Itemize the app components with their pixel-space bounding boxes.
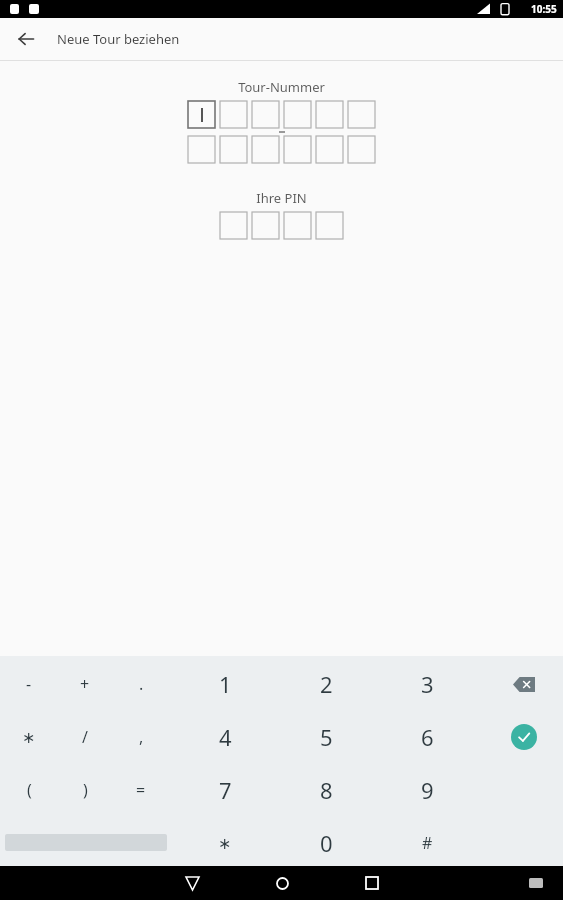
button[interactable]: Back (168, 866, 216, 900)
staticText: , (139, 726, 144, 748)
button[interactable]: 8 (298, 764, 354, 816)
button[interactable]: 3 (399, 658, 455, 710)
button[interactable]: Switch keyboard (523, 870, 549, 896)
staticText: 10:55 (531, 2, 557, 16)
staticText: ) (83, 779, 88, 801)
staticText: Ihre PIN (256, 189, 307, 207)
button[interactable]: 0 (298, 817, 354, 869)
staticText: 0 (320, 828, 333, 858)
staticText: ∗ (22, 728, 36, 747)
button[interactable]: # (399, 817, 455, 869)
button[interactable]: Home (258, 866, 306, 900)
staticText: . (139, 673, 144, 695)
button[interactable]: Digit field (284, 212, 311, 239)
staticText: - (26, 673, 32, 695)
button[interactable]: Digit field (220, 212, 247, 239)
staticText: 7 (219, 775, 232, 805)
staticText: 5 (320, 722, 333, 752)
button[interactable]: Digit field (284, 136, 311, 163)
button[interactable]: 2 (298, 658, 354, 710)
button[interactable]: / (57, 711, 113, 763)
staticText: # (422, 832, 433, 854)
button[interactable]: Digit field (188, 101, 215, 128)
button[interactable]: Digit field (252, 136, 279, 163)
button[interactable]: 7 (197, 764, 253, 816)
staticText: ( (27, 779, 32, 801)
button[interactable]: ( (1, 764, 57, 816)
staticText: + (80, 673, 90, 695)
button[interactable]: Digit field (316, 212, 343, 239)
button[interactable]: Enter (496, 711, 552, 763)
button[interactable]: Digit field (316, 101, 343, 128)
staticText: 8 (320, 775, 333, 805)
staticText: Tour-Nummer (238, 78, 325, 96)
staticText: 4 (219, 722, 232, 752)
staticText: 2 (320, 669, 333, 699)
button[interactable]: + (57, 658, 113, 710)
button[interactable]: Digit field (252, 212, 279, 239)
staticText: Neue Tour beziehen (57, 30, 180, 48)
button[interactable]: Backspace (496, 658, 552, 710)
button[interactable]: Back (10, 23, 42, 55)
button[interactable]: Digit field (220, 136, 247, 163)
button[interactable]: ∗ (197, 817, 253, 869)
staticText: 1 (219, 669, 232, 699)
button[interactable]: = (113, 764, 169, 816)
button[interactable]: Recents (348, 866, 396, 900)
button[interactable]: 9 (399, 764, 455, 816)
button[interactable]: , (113, 711, 169, 763)
button[interactable]: Digit field (348, 136, 375, 163)
button[interactable]: 4 (197, 711, 253, 763)
button[interactable]: Digit field (348, 101, 375, 128)
staticText: 3 (421, 669, 434, 699)
button[interactable]: Digit field (316, 136, 343, 163)
staticText: 6 (421, 722, 434, 752)
button[interactable]: Digit field (252, 101, 279, 128)
staticText: 9 (421, 775, 434, 805)
button[interactable]: - (1, 658, 57, 710)
button[interactable]: 5 (298, 711, 354, 763)
button[interactable]: Digit field (188, 136, 215, 163)
button[interactable]: 6 (399, 711, 455, 763)
staticText: / (82, 726, 88, 748)
staticText: ∗ (218, 834, 232, 853)
button[interactable]: . (113, 658, 169, 710)
button[interactable]: ) (57, 764, 113, 816)
button[interactable]: Digit field (284, 101, 311, 128)
button[interactable]: 1 (197, 658, 253, 710)
button[interactable]: ∗ (1, 711, 57, 763)
staticText: = (136, 779, 146, 801)
button[interactable]: Digit field (220, 101, 247, 128)
